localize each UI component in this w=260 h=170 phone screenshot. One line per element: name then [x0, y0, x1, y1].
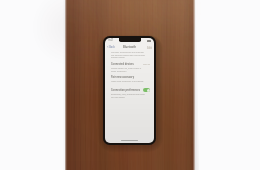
staticText: Connected devices — [111, 62, 134, 65]
staticText: Bluetooth, cast, printing and more — [111, 93, 145, 96]
staticText: Bluetooth — [123, 45, 137, 49]
staticText: the devices paired with this phone. — [111, 54, 146, 57]
staticText: Edit — [147, 46, 152, 50]
other: Toggle on — [143, 88, 150, 92]
staticText: See all — [143, 63, 150, 66]
staticText: Make sure accessory is in pairing — [111, 80, 144, 83]
button[interactable]: Pair new accessory — [105, 75, 154, 79]
staticText: 9:41 — [108, 38, 114, 42]
staticText: < Back — [107, 45, 115, 49]
staticText: Connection preferences — [111, 88, 141, 91]
staticText: for this device — [111, 96, 125, 99]
staticText: Galaxy Buds Pro, Pixel Watch 2 — [111, 67, 142, 70]
staticText: Pair new accessory — [111, 75, 135, 78]
staticText: other accessory — [111, 70, 127, 73]
button[interactable]: Connected devices — [105, 62, 154, 66]
staticText: Connect accessories and manage — [111, 51, 144, 54]
staticText: appear below. — [111, 56, 125, 59]
button[interactable]: < Back — [105, 44, 154, 50]
button[interactable]: Connection preferences — [105, 87, 154, 93]
